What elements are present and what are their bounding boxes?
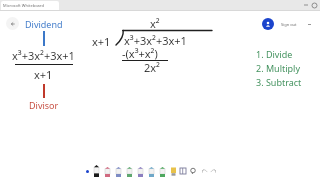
button[interactable]: Minimize [302, 1, 310, 9]
staticText: x+1 [34, 67, 53, 82]
staticText: Sign out [281, 22, 297, 27]
button[interactable]: Lasso select [188, 164, 198, 177]
button[interactable]: Microsoft Whiteboard tab [1, 1, 59, 10]
staticText: 2. Multiply [256, 62, 300, 74]
button[interactable]: Pen [135, 164, 146, 177]
staticText: x³+3x²+3x+1 [124, 33, 187, 48]
staticText: x² [150, 16, 160, 31]
button[interactable]: Back [6, 17, 19, 30]
staticText: 1. Divide [256, 48, 293, 60]
button[interactable]: Undo [200, 166, 209, 175]
button[interactable]: Account [262, 18, 274, 30]
button[interactable]: Pen [91, 164, 102, 177]
button[interactable]: Redo [209, 166, 218, 175]
button[interactable]: Highlighter [168, 164, 178, 177]
button[interactable]: Eraser [178, 164, 188, 177]
button[interactable]: Pen [113, 164, 124, 177]
staticText: Divisor [29, 99, 59, 111]
button[interactable]: Pen [146, 164, 157, 177]
button[interactable]: More options [304, 19, 315, 30]
staticText: Dividend [25, 18, 63, 30]
staticText: Microsoft Whiteboard [3, 3, 44, 8]
staticText: 2x² [144, 60, 160, 75]
staticText: 3. Subtract [256, 76, 302, 88]
staticText: -(x³+x²) [122, 46, 158, 61]
button[interactable]: Pen [157, 164, 168, 177]
button[interactable]: Pen [102, 164, 113, 177]
staticText: x³+3x²+3x+1 [12, 48, 75, 63]
button[interactable]: Pen [124, 164, 135, 177]
staticText: x+1 [92, 34, 111, 49]
button[interactable]: Profile [310, 1, 318, 9]
button[interactable]: Sign out [277, 19, 301, 30]
button[interactable]: Select [83, 167, 91, 175]
